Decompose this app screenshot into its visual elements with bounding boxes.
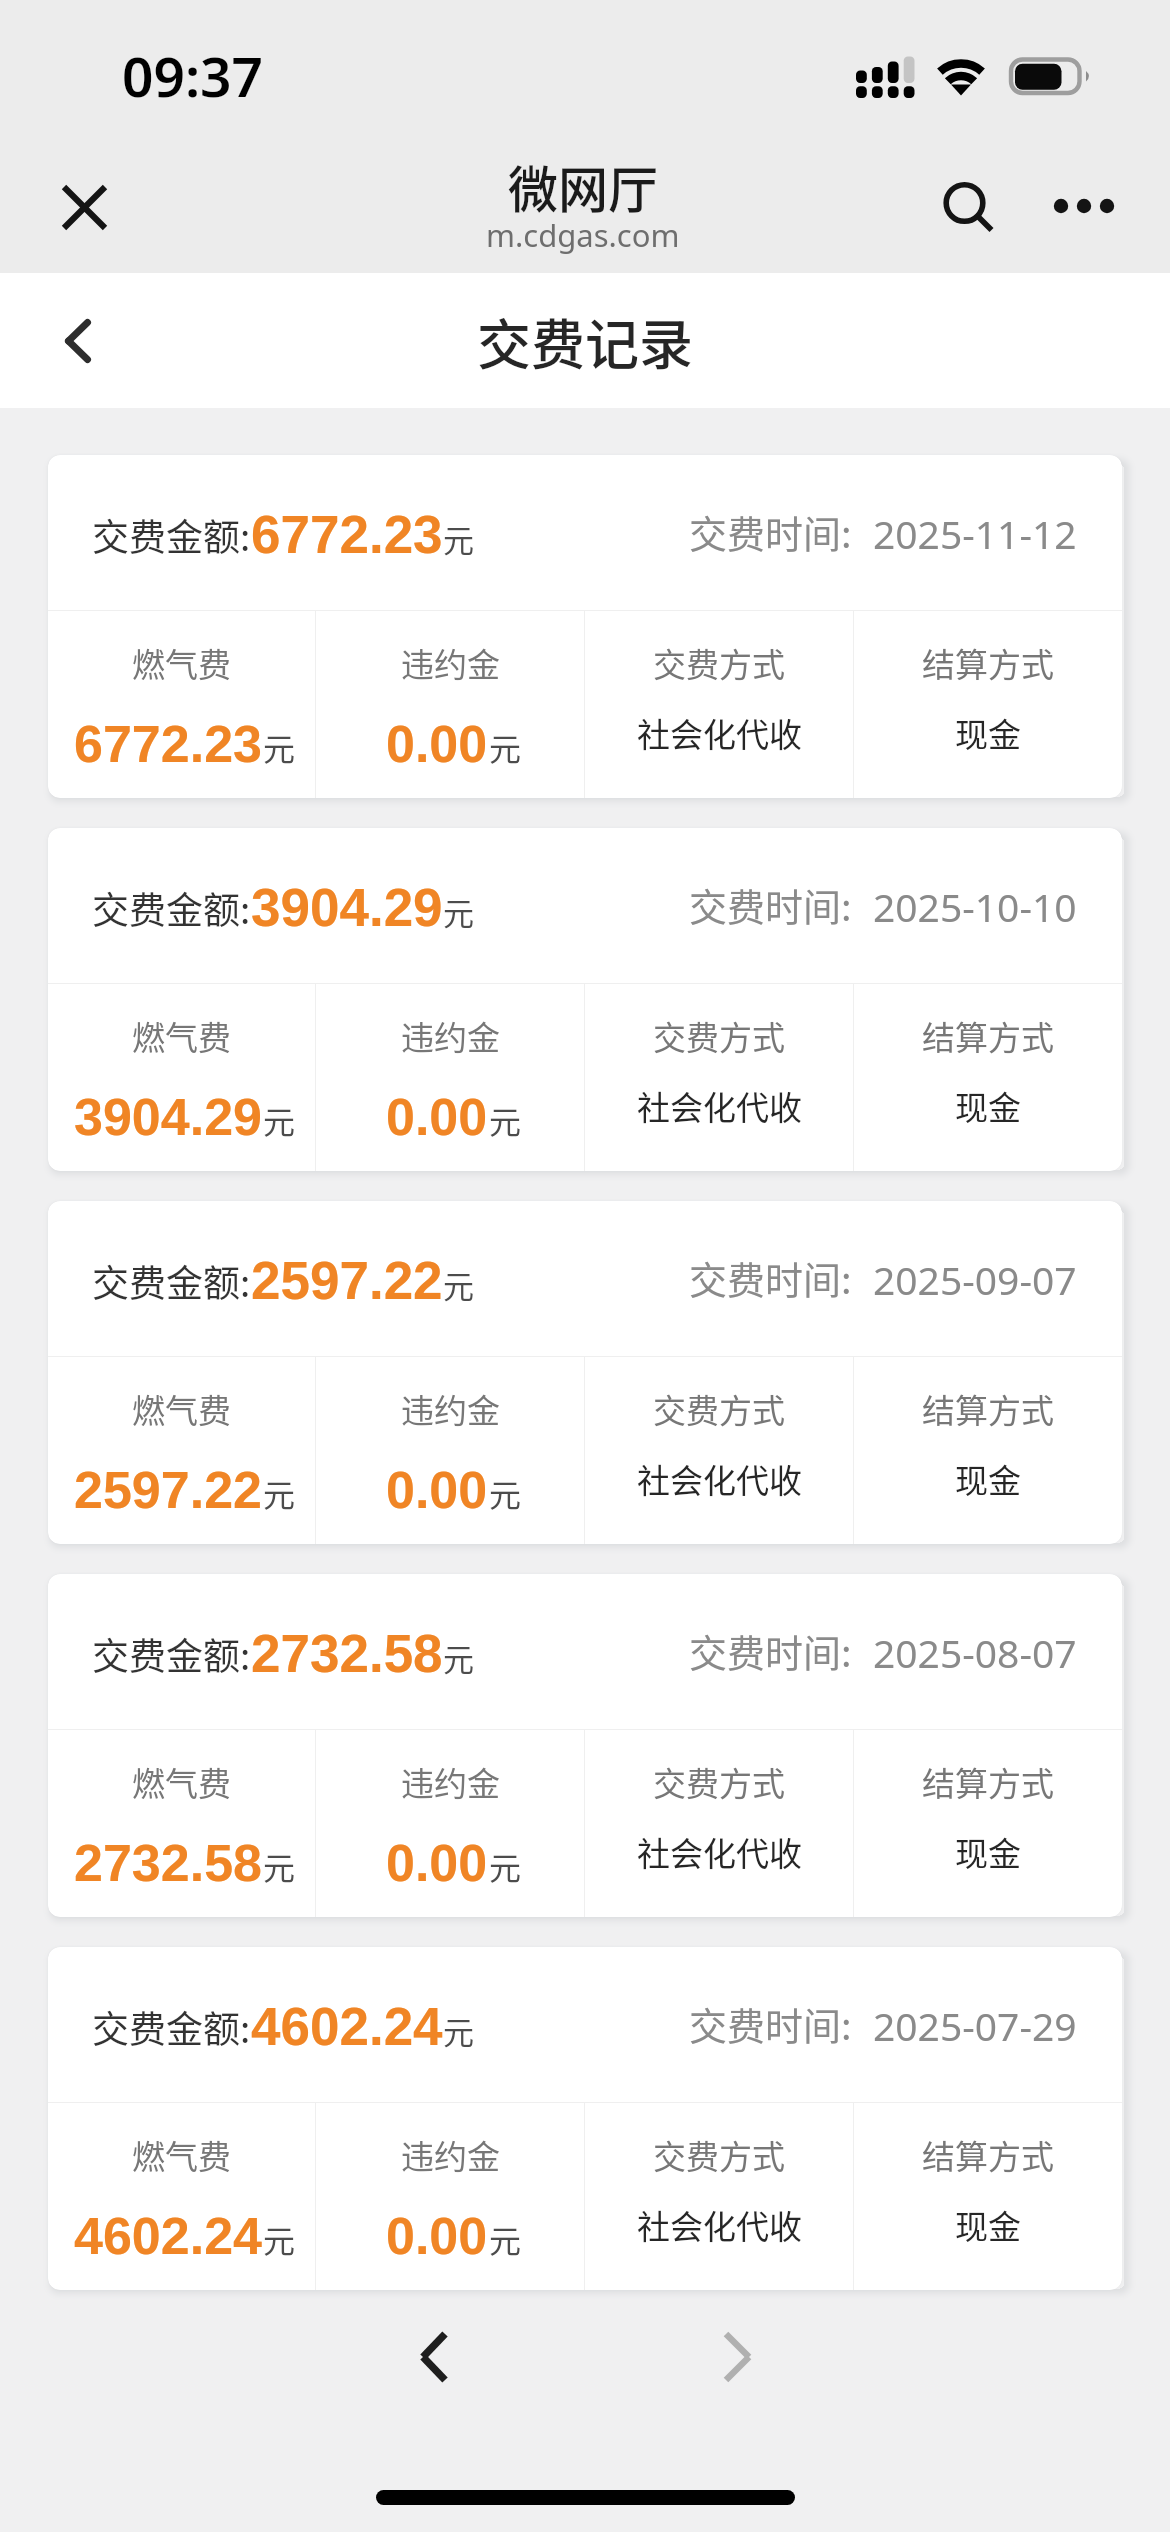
button[interactable]: 交费金额:	[48, 455, 1122, 798]
staticText: 元	[443, 1635, 474, 1680]
staticText: 元	[489, 1097, 522, 1143]
staticText: 交费金额:	[92, 2000, 251, 2054]
staticText: 4602.24	[74, 2207, 262, 2265]
staticText: 6772.23	[251, 505, 443, 564]
staticText: 结算方式	[922, 2131, 1054, 2179]
staticText: 燃气费	[132, 1385, 231, 1433]
staticText: 4602.24	[251, 1997, 443, 2056]
staticText: 元	[443, 2008, 474, 2053]
staticText: 交费时间:	[689, 1996, 852, 2051]
staticText: 现金	[955, 709, 1021, 757]
button[interactable]: 交费金额:	[48, 1574, 1122, 1917]
button[interactable]: Back	[38, 301, 118, 381]
staticText: 结算方式	[922, 1758, 1054, 1806]
staticText: 2597.22	[251, 1251, 443, 1310]
staticText: 燃气费	[132, 639, 231, 687]
staticText: 交费方式	[653, 1012, 785, 1060]
staticText: 交费方式	[653, 2131, 785, 2179]
staticText: 6772.23	[74, 715, 262, 773]
staticText: 交费金额:	[92, 1254, 251, 1308]
button[interactable]: Next page	[687, 2307, 787, 2407]
staticText: 交费金额:	[92, 508, 251, 562]
button[interactable]: 交费金额:	[48, 828, 1122, 1171]
staticText: 元	[443, 1262, 474, 1307]
button[interactable]: Search	[921, 160, 1013, 252]
staticText: 违约金	[401, 2131, 500, 2179]
staticText: 交费方式	[653, 1758, 785, 1806]
staticText: 2025-10-10	[873, 880, 1077, 933]
staticText: 元	[263, 724, 296, 770]
button[interactable]: 交费金额:	[48, 1201, 1122, 1544]
staticText: 0.00	[386, 2207, 488, 2265]
staticText: 交费时间:	[689, 877, 852, 932]
staticText: 元	[263, 1097, 296, 1143]
staticText: 交费时间:	[689, 1250, 852, 1305]
staticText: 微网厅	[508, 150, 658, 222]
staticText: 3904.29	[74, 1088, 262, 1146]
staticText: 结算方式	[922, 639, 1054, 687]
staticText: 燃气费	[132, 1012, 231, 1060]
staticText: m.cdgas.com	[486, 214, 680, 256]
staticText: 元	[489, 2216, 522, 2262]
staticText: 元	[489, 1470, 522, 1516]
staticText: 2025-08-07	[873, 1626, 1077, 1679]
staticText: 结算方式	[922, 1385, 1054, 1433]
staticText: 燃气费	[132, 1758, 231, 1806]
staticText: 交费金额:	[92, 1627, 251, 1681]
staticText: 元	[489, 724, 522, 770]
staticText: 现金	[955, 1082, 1021, 1130]
staticText: 2732.58	[74, 1834, 262, 1892]
staticText: 结算方式	[922, 1012, 1054, 1060]
staticText: 元	[443, 889, 474, 934]
staticText: 社会化代收	[637, 709, 802, 757]
staticText: 0.00	[386, 1088, 488, 1146]
staticText: 现金	[955, 1828, 1021, 1876]
staticText: 3904.29	[251, 878, 443, 937]
staticText: 交费金额:	[92, 881, 251, 935]
staticText: 2025-07-29	[873, 1999, 1077, 2052]
staticText: 0.00	[386, 1834, 488, 1892]
staticText: 元	[263, 2216, 296, 2262]
button[interactable]: Previous page	[384, 2307, 484, 2407]
button[interactable]: Close	[44, 167, 124, 247]
staticText: 0.00	[386, 1461, 488, 1519]
staticText: 2732.58	[251, 1624, 443, 1683]
staticText: 元	[443, 516, 474, 561]
staticText: 元	[489, 1843, 522, 1889]
staticText: 元	[263, 1470, 296, 1516]
staticText: 交费记录	[477, 302, 693, 380]
staticText: 违约金	[401, 1385, 500, 1433]
button[interactable]: 交费金额:	[48, 1947, 1122, 2290]
staticText: 2025-09-07	[873, 1253, 1077, 1306]
staticText: 违约金	[401, 639, 500, 687]
staticText: 社会化代收	[637, 1455, 802, 1503]
staticText: 2597.22	[74, 1461, 262, 1519]
staticText: 0.00	[386, 715, 488, 773]
staticText: 交费时间:	[689, 1623, 852, 1678]
staticText: 社会化代收	[637, 1082, 802, 1130]
staticText: 09:37	[122, 38, 264, 113]
staticText: 燃气费	[132, 2131, 231, 2179]
button[interactable]: More options	[1037, 160, 1129, 252]
staticText: 交费方式	[653, 1385, 785, 1433]
staticText: 社会化代收	[637, 1828, 802, 1876]
staticText: 交费时间:	[689, 504, 852, 559]
staticText: 现金	[955, 1455, 1021, 1503]
staticText: 现金	[955, 2201, 1021, 2249]
staticText: 违约金	[401, 1012, 500, 1060]
staticText: 违约金	[401, 1758, 500, 1806]
staticText: 2025-11-12	[873, 507, 1077, 560]
staticText: 交费方式	[653, 639, 785, 687]
staticText: 社会化代收	[637, 2201, 802, 2249]
staticText: 元	[263, 1843, 296, 1889]
